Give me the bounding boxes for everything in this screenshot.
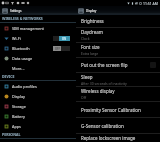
button[interactable]: Sleep (76, 73, 160, 86)
button[interactable]: Audio profiles (0, 81, 76, 91)
staticText: 11:51 AM (143, 1, 158, 6)
button[interactable]: Storage (0, 101, 76, 111)
staticText: Proximity Sensor Calibration (81, 107, 141, 113)
staticText: Battery (12, 114, 25, 119)
button[interactable]: Wireless display (76, 87, 160, 101)
button[interactable]: More... (0, 63, 76, 73)
button[interactable]: Up (0, 6, 76, 15)
button[interactable]: Proximity Sensor Calibration (76, 102, 160, 117)
staticText: Settings (10, 9, 22, 13)
button[interactable]: Put out the screen flip (76, 58, 160, 72)
button[interactable]: SIM management (0, 23, 76, 33)
staticText: More... (12, 66, 25, 71)
button[interactable]: Replace lockscreen image (76, 134, 160, 142)
button[interactable]: Daydream (76, 28, 160, 42)
staticText: Clock (81, 36, 90, 41)
staticText: DEVICE (2, 74, 15, 79)
staticText: Apps (12, 124, 21, 129)
button[interactable]: Font size (76, 43, 160, 57)
button[interactable]: Bluetooth (0, 43, 76, 53)
other: Up (2, 8, 8, 14)
staticText: Audio profiles (12, 84, 37, 89)
staticText: SIM management (12, 26, 44, 31)
button[interactable]: Display (0, 91, 76, 101)
button[interactable]: Off (53, 46, 70, 51)
staticText: Data usage (12, 56, 33, 61)
staticText: Sleep (81, 74, 93, 80)
staticText: After 30 seconds of inactivity (81, 81, 127, 86)
button[interactable]: Up (76, 6, 160, 15)
staticText: Put out the screen flip (81, 62, 128, 68)
staticText: Display (12, 94, 25, 99)
staticText: Storage (12, 104, 26, 109)
staticText: G-Sensor calibration (81, 123, 124, 129)
staticText: OFF (55, 47, 60, 51)
staticText: Brightness (81, 18, 104, 24)
staticText: Replace lockscreen image (81, 135, 136, 141)
staticText: Bluetooth (12, 46, 30, 51)
button[interactable]: Battery (0, 111, 76, 121)
button[interactable]: Apps (0, 121, 76, 131)
staticText: Daydream (81, 29, 103, 35)
staticText: Font size (81, 44, 100, 50)
button[interactable]: Data usage (0, 53, 76, 63)
button[interactable]: Brightness (76, 15, 160, 27)
other: Up (78, 8, 84, 14)
staticText: PERSONAL (2, 132, 21, 137)
staticText: Extra large (81, 51, 99, 56)
button[interactable]: G-Sensor calibration (76, 118, 160, 133)
staticText: Display (86, 9, 97, 13)
staticText: ON (62, 37, 67, 41)
staticText: WIRELESS & NETWORKS (2, 16, 43, 21)
button[interactable]: Wi-Fi (0, 33, 76, 43)
staticText: Wi-Fi (12, 36, 21, 41)
staticText: Off (81, 95, 86, 100)
button[interactable]: On (53, 36, 70, 41)
staticText: Wireless display (81, 88, 115, 94)
